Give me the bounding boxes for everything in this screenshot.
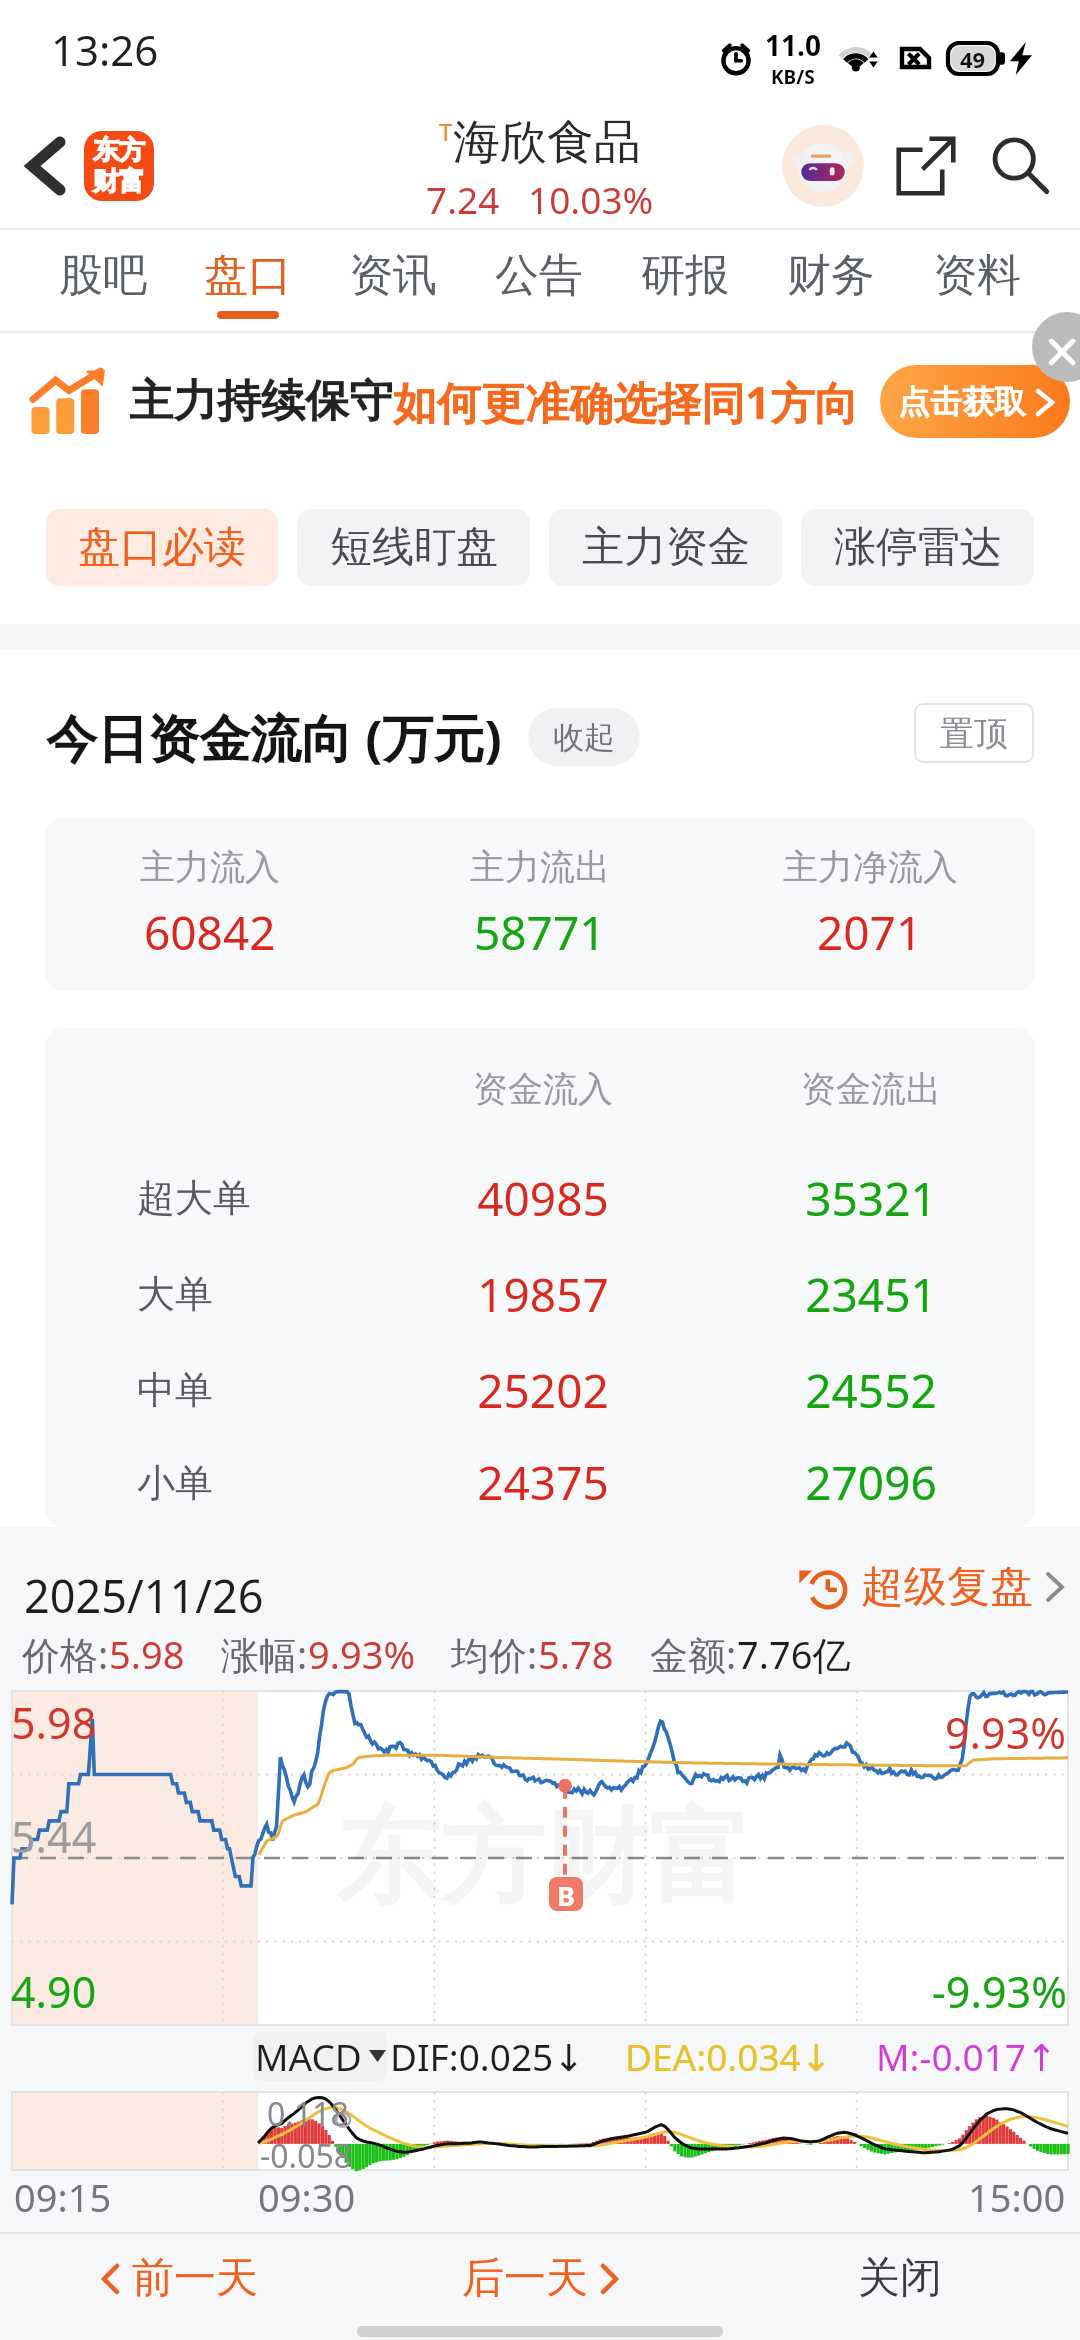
- button[interactable]: 点击获取: [880, 365, 1070, 438]
- staticText: -0.058: [260, 2134, 353, 2178]
- button[interactable]: Close ad: [1032, 312, 1080, 382]
- staticText: 点击获取: [898, 382, 1026, 422]
- staticText: 19857: [379, 1263, 707, 1326]
- staticText: 资金流入: [379, 1067, 707, 1111]
- button[interactable]: East Money: [84, 131, 154, 201]
- staticText: 资讯: [349, 248, 437, 303]
- staticText: 公告: [495, 248, 583, 303]
- staticText: 0.118: [267, 2092, 349, 2136]
- staticText: 09:15: [14, 2171, 112, 2223]
- staticText: 涨停雷达: [834, 521, 1002, 574]
- staticText: 11.0: [765, 26, 821, 64]
- staticText: 盘口: [204, 248, 292, 303]
- staticText: 大单: [137, 1270, 213, 1318]
- staticText: 5.44: [11, 1807, 97, 1866]
- staticText: 东方: [93, 134, 145, 167]
- staticText: 研报: [641, 248, 729, 303]
- staticText: 超大单: [137, 1174, 251, 1222]
- staticText: B: [557, 1877, 575, 1911]
- staticText: 25202: [379, 1359, 707, 1422]
- button[interactable]: 置顶: [914, 703, 1034, 763]
- staticText: 盘口必读: [78, 521, 246, 574]
- staticText: 主力净流入: [783, 845, 958, 889]
- staticText: 主力持续保守: [129, 374, 393, 429]
- staticText: 金额:: [650, 1628, 737, 1680]
- staticText: 财富: [93, 165, 145, 198]
- staticText: 小单: [137, 1459, 213, 1507]
- staticText: 超级复盘: [861, 1560, 1033, 1614]
- staticText: 27096: [707, 1451, 1035, 1514]
- staticText: 后一天: [462, 2252, 588, 2305]
- staticText: T: [439, 115, 453, 148]
- button[interactable]: 前一天: [0, 2234, 360, 2322]
- staticText: 主力流入: [140, 845, 280, 889]
- staticText: 4.90: [11, 1962, 97, 2021]
- staticText: 10.03%: [528, 174, 654, 224]
- button[interactable]: 资料: [904, 230, 1050, 331]
- staticText: 短线盯盘: [330, 521, 498, 574]
- staticText: 13:26: [51, 21, 159, 78]
- staticText: 东方财富: [336, 1793, 752, 1924]
- staticText: 财务: [787, 248, 875, 303]
- button[interactable]: 财务: [758, 230, 904, 331]
- staticText: 7.76亿: [737, 1628, 851, 1680]
- staticText: 2071: [817, 901, 923, 964]
- staticText: 49: [960, 44, 986, 74]
- staticText: 收起: [553, 718, 615, 757]
- button[interactable]: 收起: [528, 708, 640, 766]
- staticText: DIF:0.025↓: [390, 2031, 585, 2081]
- staticText: 9.93%: [308, 1628, 415, 1680]
- staticText: 海欣食品: [453, 113, 641, 172]
- button[interactable]: 股吧: [30, 230, 175, 331]
- button[interactable]: 盘口必读: [46, 509, 278, 586]
- staticText: 涨幅:: [221, 1628, 308, 1680]
- staticText: 24552: [707, 1359, 1035, 1422]
- button[interactable]: 后一天: [360, 2234, 720, 2322]
- button[interactable]: 盘口: [175, 230, 320, 331]
- staticText: 5.98: [11, 1693, 97, 1752]
- button[interactable]: 短线盯盘: [297, 509, 530, 586]
- button[interactable]: AI assistant: [782, 125, 864, 207]
- staticText: MACD: [255, 2031, 362, 2081]
- staticText: 09:30: [258, 2171, 356, 2223]
- staticText: 均价:: [451, 1628, 538, 1680]
- staticText: 资料: [933, 248, 1021, 303]
- staticText: 35321: [707, 1167, 1035, 1230]
- staticText: 主力流出: [470, 845, 610, 889]
- staticText: 今日资金流向 (万元): [46, 702, 502, 772]
- staticText: 2025/11/26: [24, 1565, 264, 1626]
- staticText: 价格:: [22, 1628, 109, 1680]
- button[interactable]: 研报: [612, 230, 758, 331]
- staticText: 主力资金: [582, 521, 750, 574]
- staticText: 60842: [144, 901, 276, 964]
- staticText: 24375: [379, 1451, 707, 1514]
- staticText: 58771: [474, 901, 606, 964]
- staticText: 资金流出: [707, 1067, 1035, 1111]
- button[interactable]: 公告: [466, 230, 612, 331]
- staticText: KB/S: [771, 64, 815, 90]
- button[interactable]: 资讯: [320, 230, 466, 331]
- staticText: 中单: [137, 1366, 213, 1414]
- button[interactable]: Share: [888, 128, 964, 204]
- button[interactable]: 超级复盘: [801, 1560, 1064, 1614]
- staticText: 关闭: [858, 2252, 942, 2305]
- button[interactable]: Search: [982, 128, 1058, 204]
- button[interactable]: 主力资金: [549, 509, 782, 586]
- button[interactable]: Back: [14, 135, 76, 197]
- button[interactable]: 涨停雷达: [801, 509, 1034, 586]
- staticText: 5.98: [109, 1628, 185, 1680]
- button[interactable]: 关闭: [720, 2234, 1080, 2322]
- staticText: 23451: [707, 1263, 1035, 1326]
- staticText: 7.24: [426, 174, 500, 224]
- staticText: DEA:0.034↓: [625, 2031, 832, 2081]
- staticText: 9.93%: [945, 1703, 1067, 1762]
- staticText: -9.93%: [932, 1962, 1067, 2021]
- staticText: 置顶: [940, 712, 1008, 755]
- staticText: 40985: [379, 1167, 707, 1230]
- staticText: 15:00: [968, 2171, 1066, 2223]
- staticText: 5.78: [538, 1628, 614, 1680]
- staticText: 股吧: [59, 248, 147, 303]
- staticText: M:-0.017↑: [876, 2031, 1057, 2081]
- staticText: 前一天: [132, 2252, 258, 2305]
- button[interactable]: MACD: [253, 2031, 387, 2081]
